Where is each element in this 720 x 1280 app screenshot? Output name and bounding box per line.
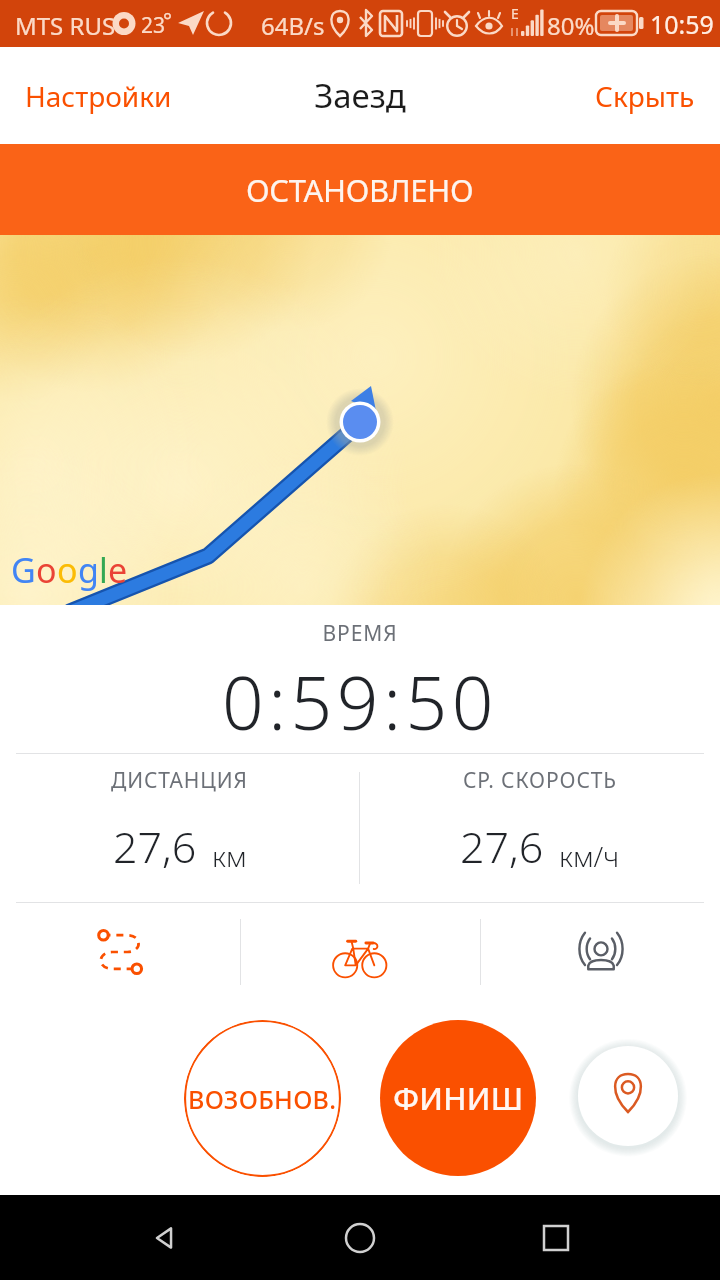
staticText: ВОЗОБНОВ. [188,1082,337,1116]
staticText: o [36,547,57,593]
button[interactable]: ВОЗОБНОВ. [184,1020,341,1177]
button[interactable]: Activity type: bike [241,903,480,1001]
button[interactable]: ФИНИШ [380,1020,536,1176]
staticText: ВРЕМЯ [0,619,720,648]
staticText: ФИНИШ [393,1077,524,1119]
staticText: l [99,547,108,593]
button[interactable]: My location [570,1038,686,1154]
staticText: км/ч [559,837,620,875]
button[interactable]: Home [328,1206,392,1270]
staticText: 80% [547,9,595,42]
staticText: E [511,4,519,23]
button[interactable]: Настройки [10,65,187,127]
staticText: СР. СКОРОСТЬ [463,766,617,795]
button[interactable]: Live broadcast [481,903,720,1001]
staticText: ОСТАНОВЛЕНО [246,169,474,211]
staticText: Заезд [314,73,406,118]
staticText: G [11,547,36,593]
staticText: 0:59:50 [0,652,720,751]
staticText: Скрыть [595,77,695,115]
staticText: 10:59 [650,7,714,41]
staticText: 27,6 [460,817,544,876]
staticText: 64B/s [261,9,325,42]
staticText: 27,6 [113,817,197,876]
button[interactable]: Скрыть [580,65,710,127]
button[interactable]: Recents [524,1206,588,1270]
staticText: ° [163,6,172,35]
staticText: MTS RUS [15,9,116,42]
staticText: ДИСТАНЦИЯ [111,766,248,795]
staticText: o [57,547,78,593]
staticText: g [78,547,99,593]
staticText: 23 [141,11,166,40]
staticText: км [212,837,247,875]
staticText: e [108,547,128,593]
staticText: Настройки [25,77,172,115]
button[interactable]: Route map [0,903,240,1001]
button[interactable]: Back [132,1206,196,1270]
